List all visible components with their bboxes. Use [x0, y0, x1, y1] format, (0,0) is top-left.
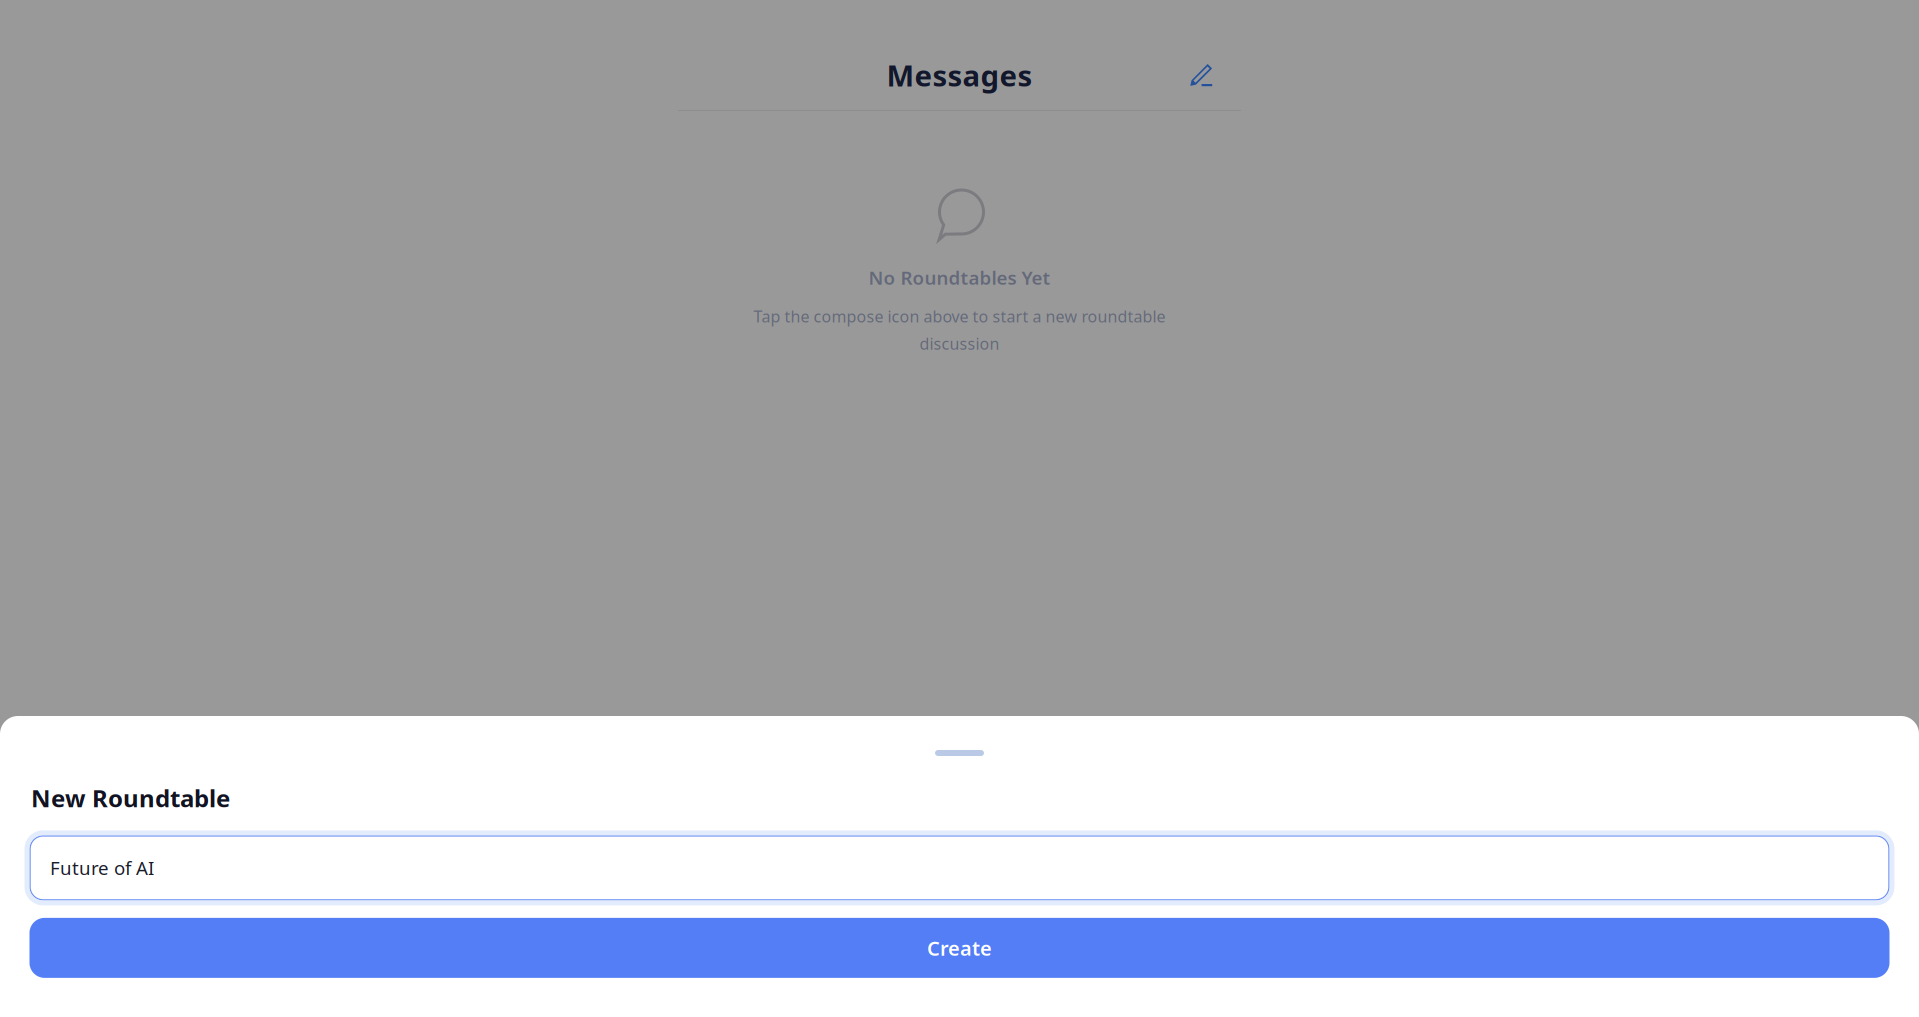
- staticText: discussion: [919, 333, 999, 354]
- staticText: New Roundtable: [31, 782, 230, 814]
- staticText: Create: [927, 935, 992, 961]
- staticText: Messages: [886, 55, 1032, 94]
- button[interactable]: Create: [0, 918, 1919, 978]
- staticText: Future of AI: [50, 855, 154, 880]
- staticText: Tap the compose icon above to start a ne…: [753, 306, 1165, 327]
- button[interactable]: Compose: [1181, 55, 1221, 95]
- button[interactable]: Future of AI: [0, 833, 1919, 903]
- staticText: No Roundtables Yet: [868, 265, 1050, 290]
